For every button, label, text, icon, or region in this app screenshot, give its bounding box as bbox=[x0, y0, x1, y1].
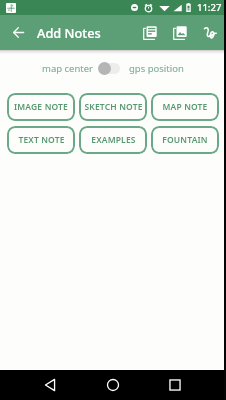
button[interactable]: MAP NOTE bbox=[151, 93, 219, 121]
button[interactable]: Home bbox=[98, 370, 128, 400]
staticText: TEXT NOTE bbox=[18, 134, 65, 146]
staticText: map center bbox=[42, 62, 94, 75]
button[interactable]: Photo notes bbox=[165, 18, 195, 48]
button[interactable]: Sketch note bbox=[195, 18, 225, 48]
staticText: 11:27 bbox=[197, 1, 222, 14]
staticText: SKETCH NOTE bbox=[84, 101, 143, 113]
button[interactable]: Back bbox=[0, 15, 36, 50]
button[interactable]: Text notes bbox=[135, 18, 165, 48]
button[interactable]: EXAMPLES bbox=[79, 126, 147, 154]
button[interactable]: FOUNTAIN bbox=[151, 126, 219, 154]
staticText: Add Notes bbox=[37, 24, 101, 41]
staticText: gps position bbox=[129, 62, 184, 75]
staticText: MAP NOTE bbox=[162, 101, 208, 113]
staticText: FOUNTAIN bbox=[162, 134, 208, 146]
button[interactable]: Back bbox=[35, 370, 65, 400]
button[interactable]: SKETCH NOTE bbox=[79, 93, 147, 121]
button[interactable]: Recent apps bbox=[160, 370, 190, 400]
button[interactable] bbox=[98, 61, 120, 75]
button[interactable]: TEXT NOTE bbox=[7, 126, 75, 154]
staticText: EXAMPLES bbox=[91, 134, 136, 146]
button[interactable]: IMAGE NOTE bbox=[7, 93, 75, 121]
staticText: IMAGE NOTE bbox=[14, 101, 68, 113]
